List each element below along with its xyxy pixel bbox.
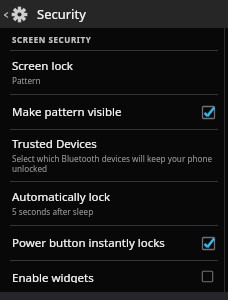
staticText: Select which Bluetooth devices will keep…	[12, 153, 216, 174]
button[interactable]: Screen lock	[0, 51, 228, 94]
button[interactable]: Power button instantly locks	[0, 226, 228, 260]
staticText: Power button instantly locks	[12, 235, 165, 251]
staticText: Automatically lock	[12, 189, 111, 205]
staticText: Make pattern visible	[12, 104, 122, 120]
button[interactable]: Make pattern visible	[0, 95, 228, 129]
staticText: SCREEN SECURITY	[12, 34, 92, 45]
staticText: Screen lock	[12, 58, 74, 74]
staticText: 5 seconds after sleep	[12, 206, 94, 217]
staticText: Trusted Devices	[12, 136, 97, 152]
staticText: Pattern	[12, 75, 41, 86]
staticText: Enable widgets	[12, 270, 94, 283]
staticText: Security	[37, 5, 86, 23]
button[interactable]: Enable widgets	[0, 261, 228, 292]
button[interactable]: Automatically lock	[0, 182, 228, 225]
button[interactable]: Trusted Devices	[0, 130, 228, 181]
button[interactable]: Navigate up	[0, 3, 30, 26]
